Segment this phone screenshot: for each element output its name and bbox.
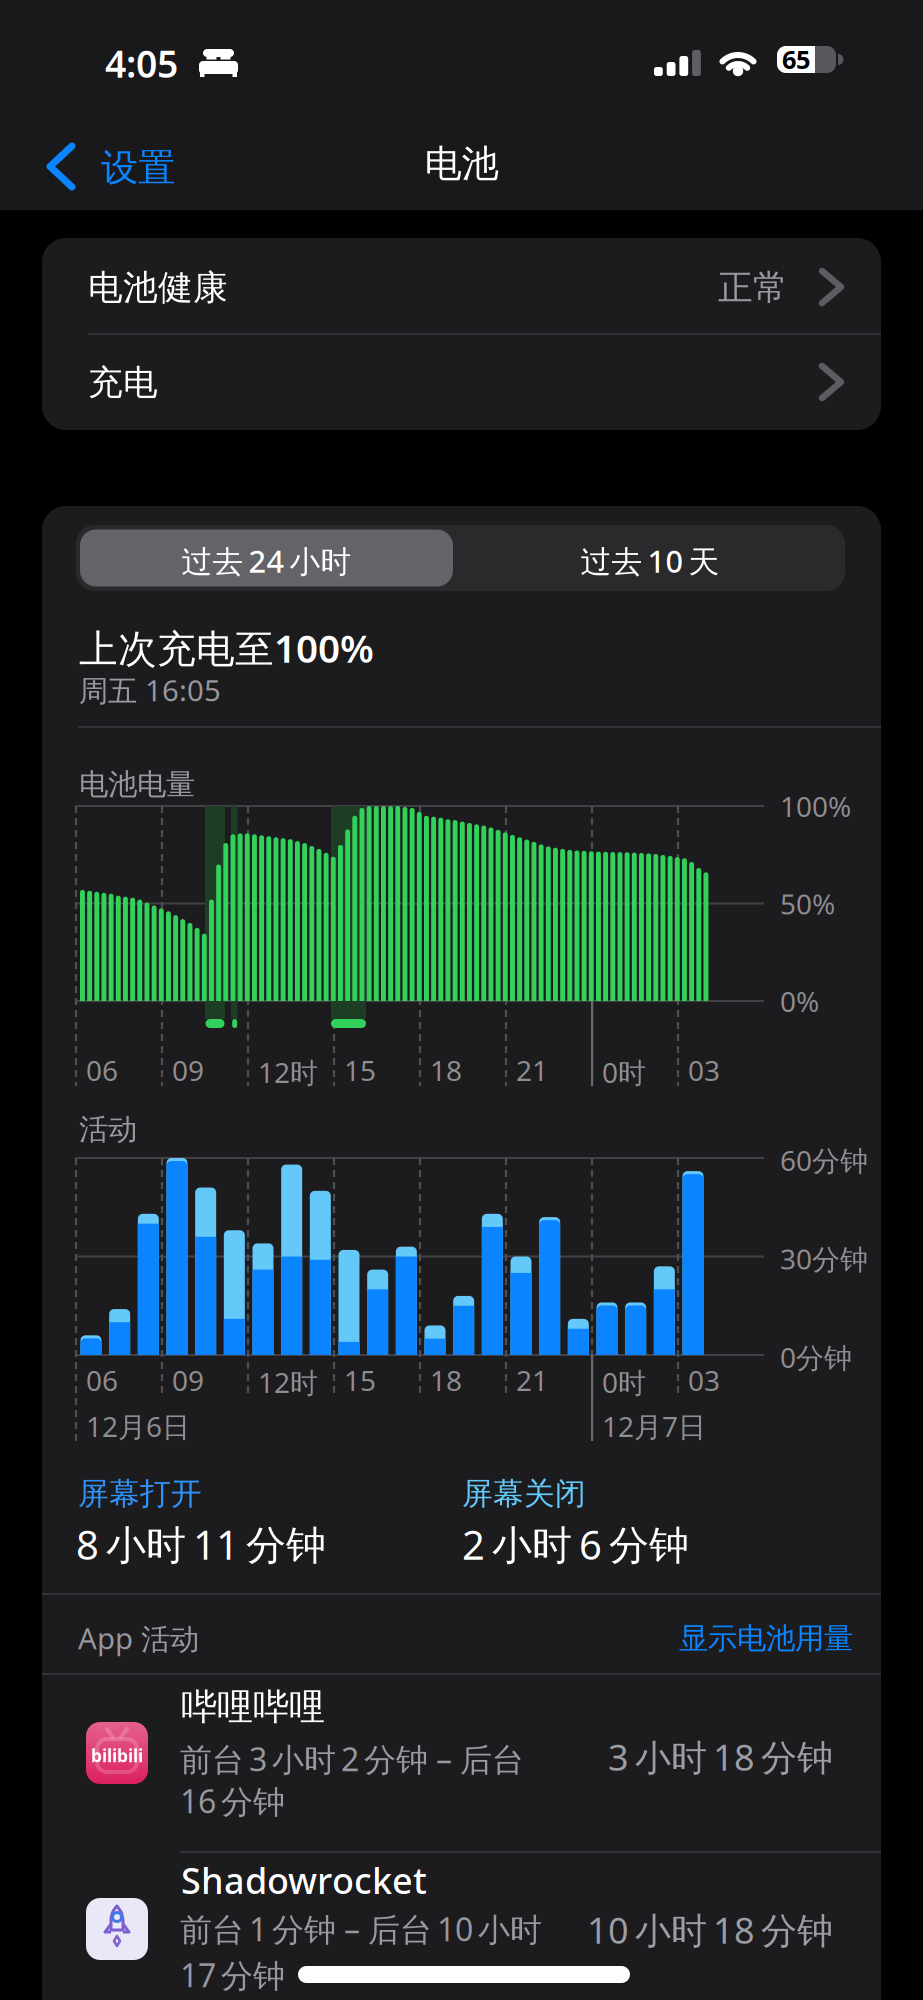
staticText: 电池电量 (79, 766, 195, 802)
staticText: 电池健康 (88, 266, 228, 309)
staticText: 过去 10 天 (580, 540, 719, 581)
button[interactable]: 充电 (42, 334, 881, 430)
staticText: 65 (782, 42, 810, 76)
staticText: 上次充电至100% (79, 622, 374, 673)
staticText: 12月6日 (86, 1408, 190, 1445)
staticText: 显示电池用量 (679, 1620, 853, 1656)
staticText: 15 (344, 1051, 376, 1089)
staticText: 8 小时 11 分钟 (76, 1518, 326, 1571)
staticText: 活动 (79, 1111, 137, 1147)
staticText: 17 分钟 (180, 1954, 285, 1996)
staticText: 21 (516, 1361, 548, 1399)
staticText: 2 小时 6 分钟 (462, 1518, 689, 1571)
staticText: 4:05 (105, 38, 178, 88)
staticText: 21 (516, 1051, 548, 1089)
staticText: 30分钟 (780, 1240, 868, 1277)
staticText: 06 (86, 1361, 118, 1399)
staticText: 60分钟 (780, 1142, 868, 1179)
staticText: 屏幕打开 (78, 1475, 202, 1513)
staticText: 屏幕关闭 (462, 1475, 586, 1513)
button[interactable]: bilibili (42, 1676, 881, 1846)
staticText: 前台 3 小时 2 分钟 – 后台 (180, 1738, 524, 1780)
staticText: 0% (780, 982, 819, 1020)
staticText: 12时 (258, 1054, 318, 1091)
staticText: 充电 (88, 361, 158, 404)
staticText: 09 (172, 1361, 204, 1399)
staticText: 0分钟 (780, 1339, 852, 1376)
button[interactable]: 显示电池用量 (600, 1607, 860, 1669)
staticText: 0时 (602, 1364, 646, 1401)
staticText: 电池 (424, 141, 498, 187)
staticText: 50% (780, 885, 835, 922)
staticText: 12月7日 (602, 1408, 706, 1445)
staticText: 09 (172, 1051, 204, 1089)
staticText: 03 (688, 1051, 720, 1089)
staticText: 前台 1 分钟 – 后台 10 小时 (180, 1908, 542, 1950)
button[interactable]: 电池健康 (42, 238, 881, 334)
staticText: App 活动 (78, 1618, 199, 1658)
staticText: 0时 (602, 1054, 646, 1091)
staticText: 正常 (718, 266, 788, 309)
staticText: 06 (86, 1051, 118, 1089)
staticText: 03 (688, 1361, 720, 1399)
staticText: 周五 16:05 (79, 670, 221, 709)
button[interactable]: 过去 24 小时 (80, 529, 453, 586)
staticText: bilibili (91, 1744, 143, 1767)
button[interactable]: 返回设置 (43, 143, 243, 190)
staticText: 100% (780, 787, 851, 825)
staticText: 16 分钟 (180, 1780, 285, 1822)
button[interactable]: Shadowrocket (42, 1853, 881, 2000)
staticText: Shadowrocket (181, 1856, 427, 1904)
staticText: 3 小时 18 分钟 (608, 1733, 833, 1781)
button[interactable]: 过去 10 天 (458, 529, 842, 586)
staticText: 过去 24 小时 (181, 540, 351, 581)
staticText: 18 (430, 1051, 462, 1089)
staticText: 哔哩哔哩 (181, 1685, 325, 1729)
staticText: 18 (430, 1361, 462, 1399)
staticText: 12时 (258, 1364, 318, 1401)
staticText: 15 (344, 1361, 376, 1399)
staticText: 10 小时 18 分钟 (587, 1906, 833, 1954)
staticText: 设置 (101, 145, 175, 191)
